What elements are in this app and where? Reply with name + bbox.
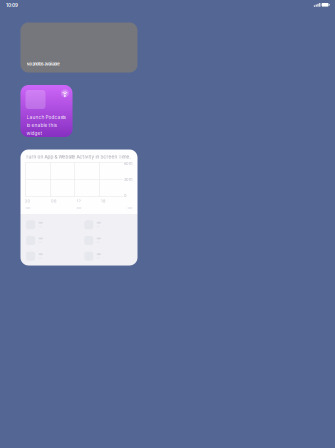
- button[interactable]: No photos available: [20, 22, 137, 72]
- staticText: 06: [51, 199, 56, 203]
- staticText: widget: [26, 131, 42, 136]
- staticText: No photos available: [26, 61, 59, 66]
- staticText: to enable this: [26, 122, 56, 128]
- staticText: 18: [101, 199, 105, 203]
- staticText: 60m: [124, 161, 133, 166]
- button[interactable]: Turn on App & Website Activity in Screen…: [20, 149, 137, 265]
- staticText: 00: [24, 199, 30, 203]
- staticText: Launch Podcasts: [26, 114, 65, 120]
- staticText: 10:09: [6, 2, 18, 8]
- staticText: 30m: [124, 177, 133, 182]
- staticText: 12: [76, 199, 80, 203]
- button[interactable]: Launch Podcasts: [20, 85, 72, 137]
- staticText: Turn on App & Website Activity in Screen…: [25, 154, 130, 160]
- staticText: 0: [124, 193, 127, 198]
